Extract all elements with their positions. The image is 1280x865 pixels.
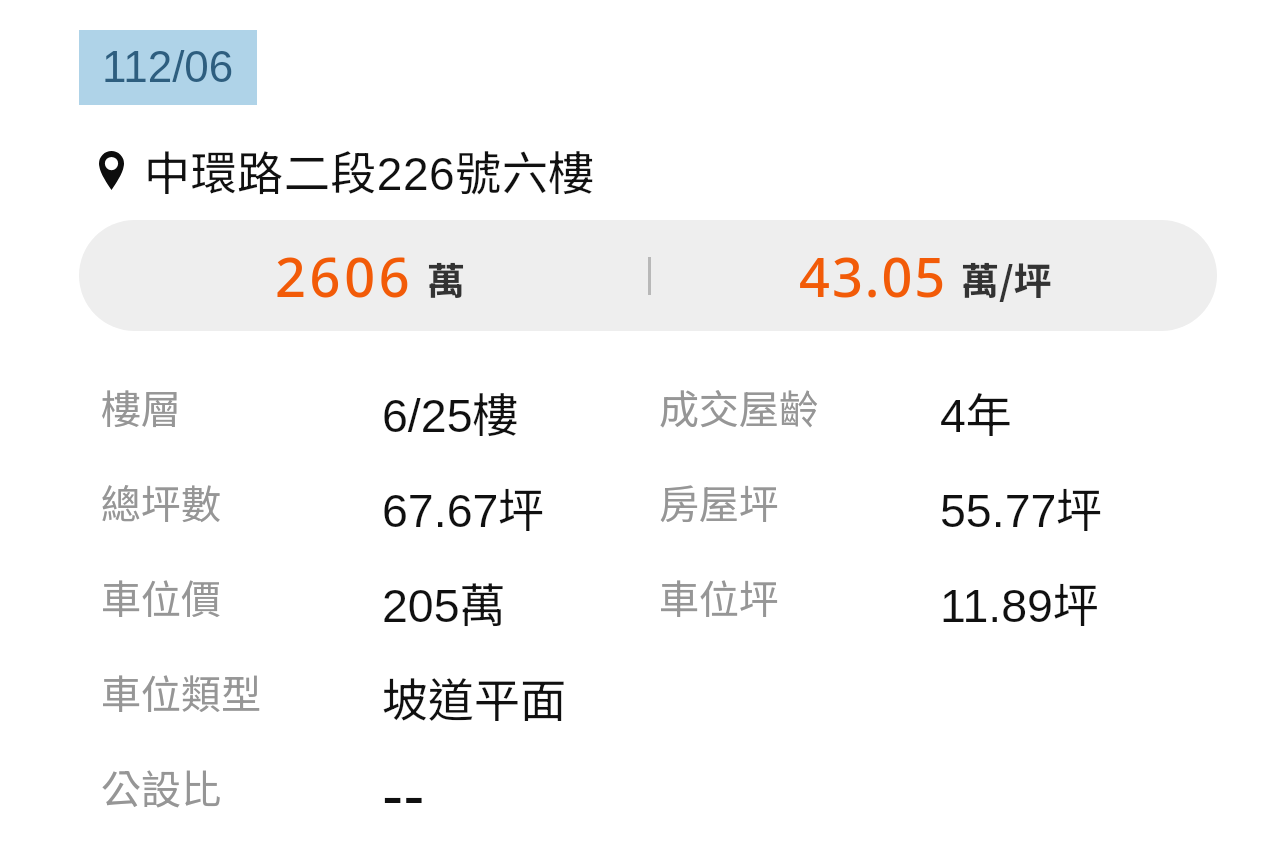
button[interactable]: 公設比 xyxy=(0,739,1280,834)
staticText: 總坪數 xyxy=(101,473,221,531)
staticText: 成交屋齡 xyxy=(659,378,819,436)
button[interactable]: 車位價 xyxy=(0,549,1280,644)
staticText: 205萬 xyxy=(382,569,506,636)
staticText: 中環路二段226號六樓 xyxy=(144,137,595,204)
staticText: 車位價 xyxy=(101,568,221,626)
staticText: 車位類型 xyxy=(101,663,261,721)
staticText: 112/06 xyxy=(102,42,234,91)
staticText: 車位坪 xyxy=(659,568,779,626)
button[interactable]: 112/06 xyxy=(79,30,257,105)
staticText: 公設比 xyxy=(101,758,221,816)
button[interactable]: 總坪數 xyxy=(0,454,1280,549)
staticText: 55.77坪 xyxy=(940,474,1103,541)
staticText: 房屋坪 xyxy=(659,473,779,531)
button[interactable]: 2606 xyxy=(79,220,1217,331)
staticText: -- xyxy=(382,760,425,832)
staticText: 67.67坪 xyxy=(382,474,545,541)
button[interactable]: 樓層 xyxy=(0,359,1280,454)
staticText: 43.05 xyxy=(799,239,948,313)
button[interactable]: 車位類型 xyxy=(0,644,1280,739)
staticText: 坡道平面 xyxy=(382,664,566,731)
staticText: 4年 xyxy=(940,379,1012,446)
staticText: 2606 xyxy=(275,239,414,313)
staticText: 6/25樓 xyxy=(382,379,519,446)
staticText: 萬 xyxy=(427,251,466,306)
button[interactable]: Location xyxy=(99,137,595,204)
staticText: 11.89坪 xyxy=(940,569,1099,636)
other: Location xyxy=(99,151,124,190)
staticText: 樓層 xyxy=(101,378,181,436)
staticText: 萬/坪 xyxy=(961,251,1052,306)
